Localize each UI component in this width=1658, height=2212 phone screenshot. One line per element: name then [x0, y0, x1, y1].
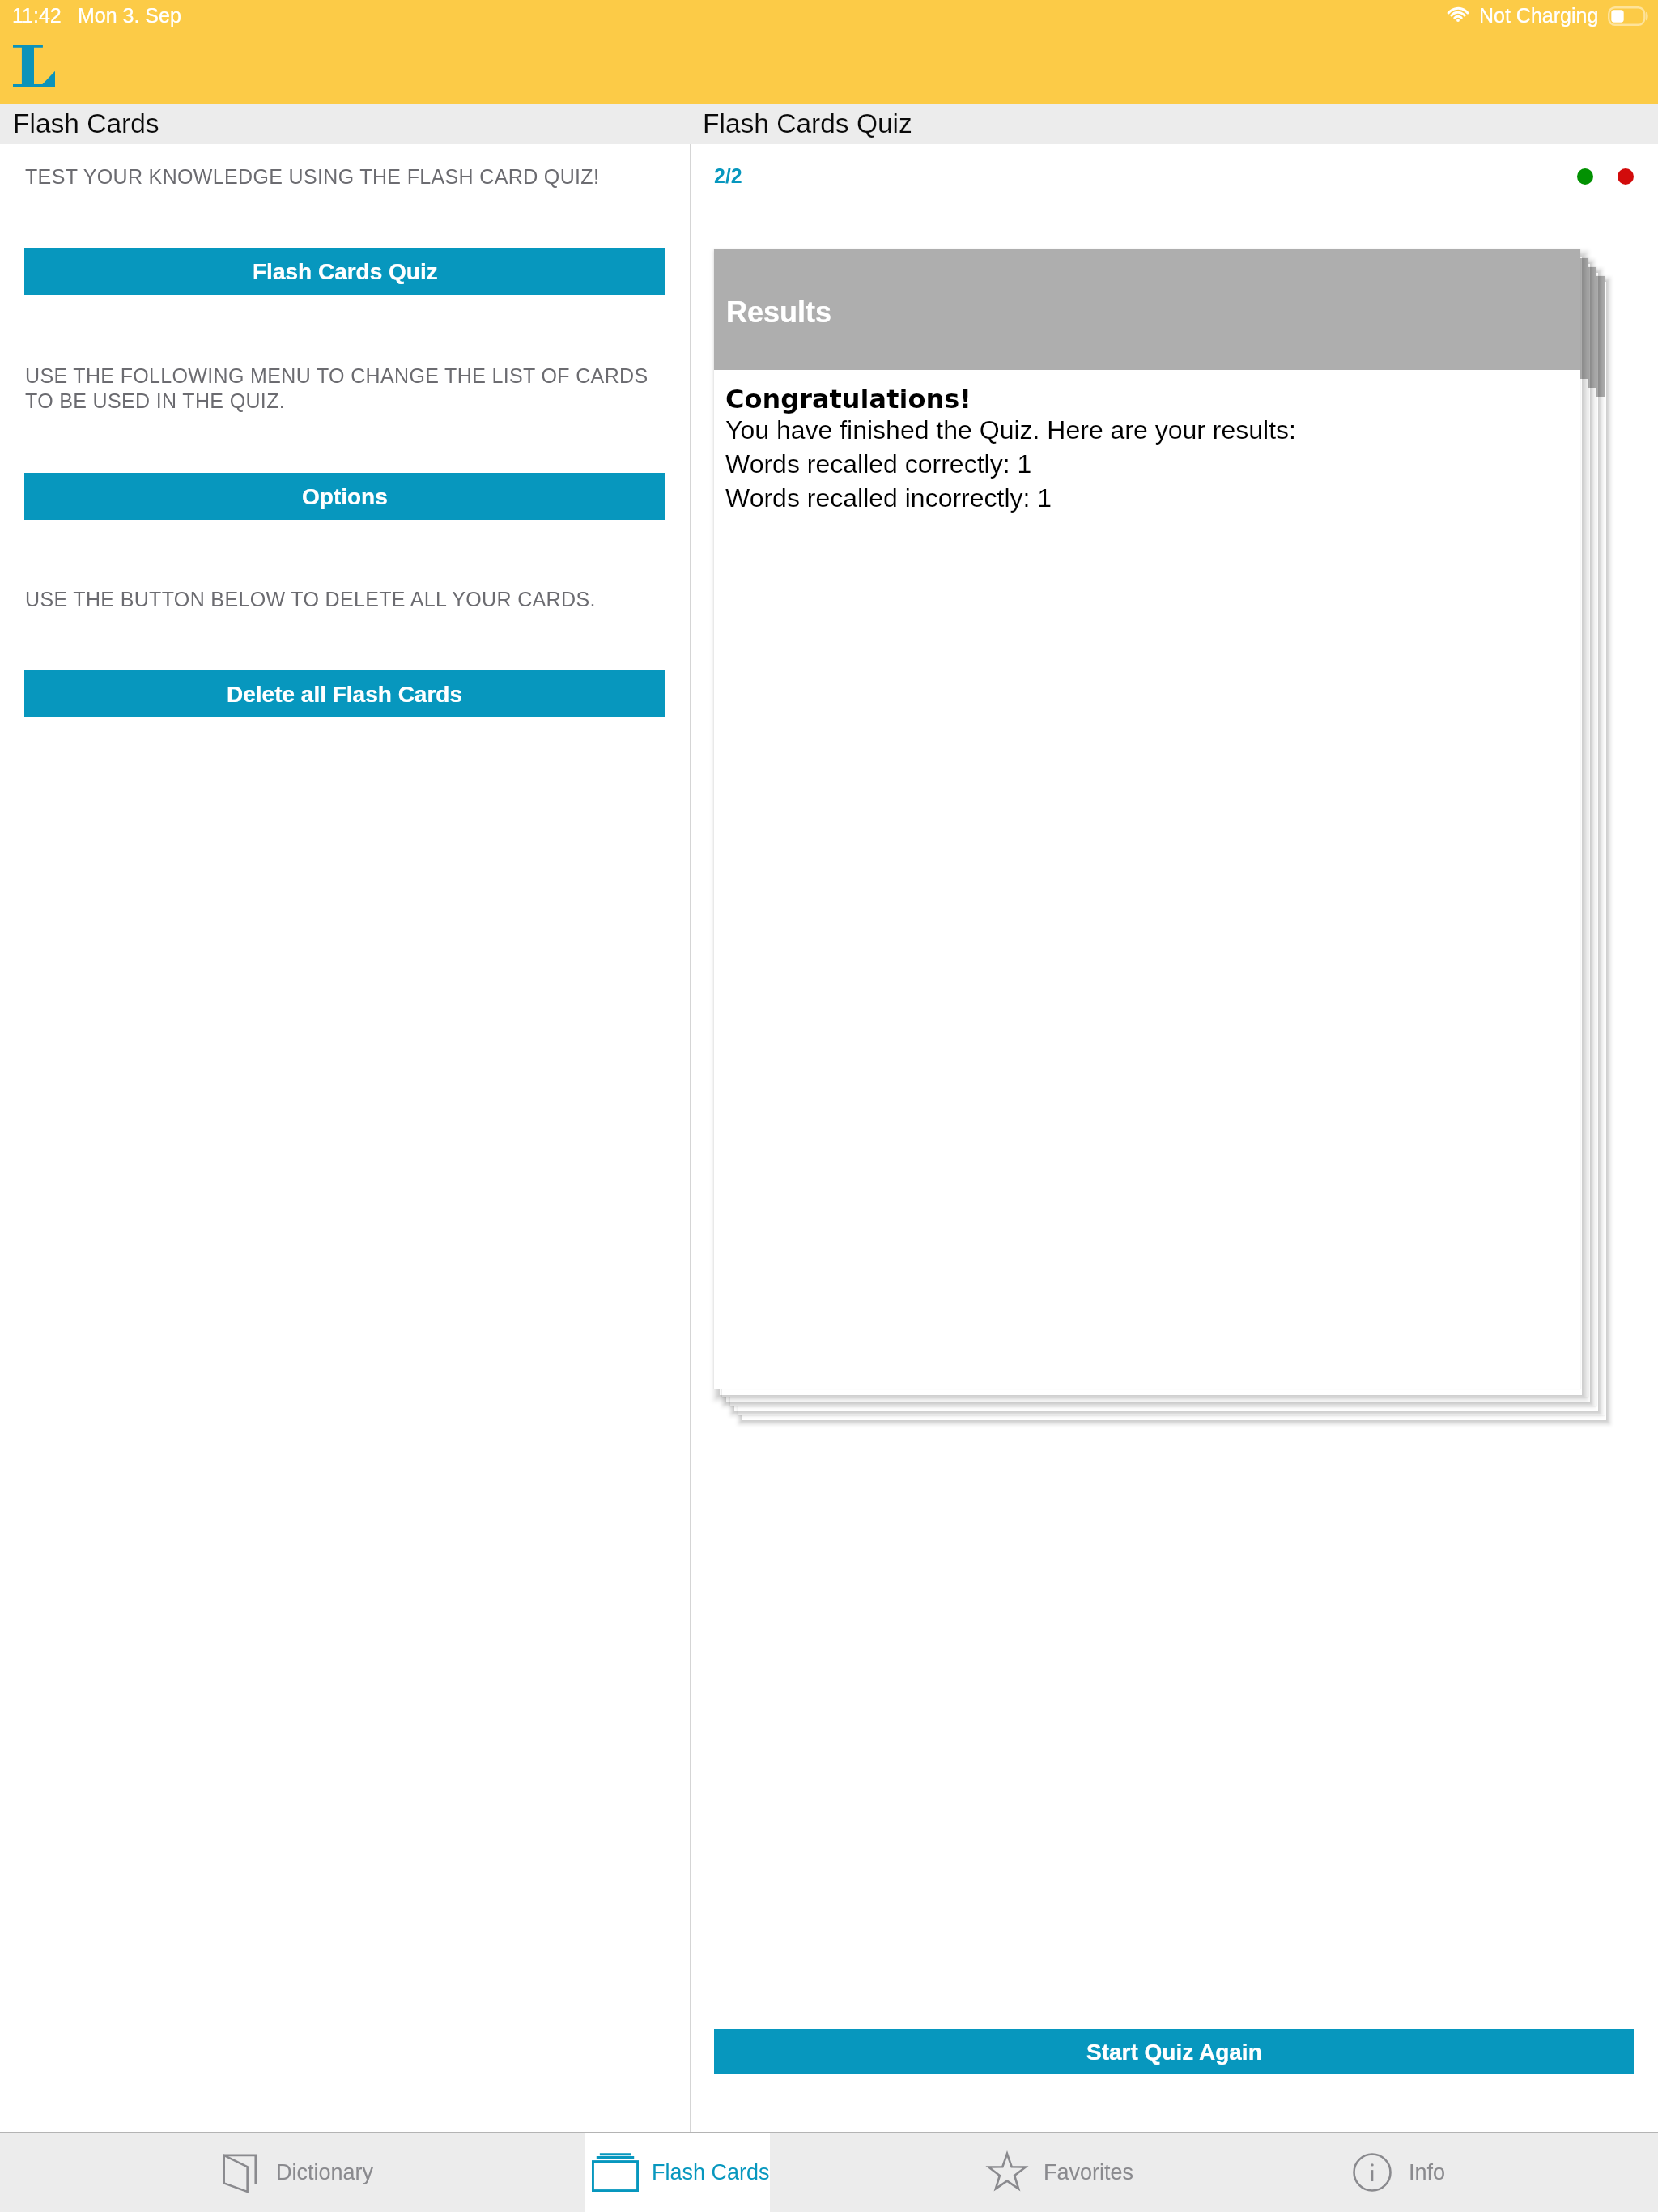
staticText: USE THE BUTTON BELOW TO DELETE ALL YOUR … [25, 588, 666, 610]
staticText: Results [726, 296, 832, 328]
button[interactable]: Flash Cards Quiz [24, 248, 665, 295]
button[interactable]: Dictionary [215, 2133, 380, 2212]
staticText: Start Quiz Again [1086, 2040, 1262, 2065]
staticText: Flash Cards Quiz [253, 259, 438, 284]
button[interactable]: Flash Cards [585, 2133, 770, 2212]
staticText: Flash Cards Quiz [703, 108, 912, 138]
button[interactable]: Options [24, 473, 665, 520]
button[interactable]: Delete all Flash Cards [24, 670, 665, 717]
staticText: Mon 3. Sep [78, 4, 181, 27]
other: Wi-Fi [1446, 6, 1470, 23]
staticText: USE THE FOLLOWING MENU TO CHANGE THE LIS… [25, 364, 666, 412]
button[interactable]: Favorites [980, 2133, 1140, 2212]
staticText: You have finished the Quiz. Here are you… [725, 415, 1296, 445]
button[interactable]: Start Quiz Again [714, 2029, 1634, 2074]
other: Battery [1608, 6, 1650, 26]
staticText: Options [302, 484, 388, 509]
staticText: Words recalled correctly: 1 [725, 449, 1032, 479]
button[interactable]: Results [714, 249, 1580, 1389]
staticText: Dictionary [276, 2160, 374, 2184]
other: Correct answers [1577, 168, 1593, 185]
staticText: Congratulations! [725, 384, 971, 414]
staticText: 2/2 [714, 164, 742, 187]
staticText: Flash Cards [13, 108, 159, 138]
staticText: 11:42 [12, 4, 62, 27]
staticText: Favorites [1044, 2160, 1134, 2184]
staticText: Delete all Flash Cards [227, 682, 463, 707]
staticText: Words recalled incorrectly: 1 [725, 483, 1052, 513]
other: Incorrect answers [1618, 168, 1634, 185]
staticText: Flash Cards [652, 2160, 770, 2184]
button[interactable]: Info [1346, 2133, 1454, 2212]
staticText: Not Charging [1479, 4, 1599, 27]
staticText: Info [1409, 2160, 1446, 2184]
staticText: TEST YOUR KNOWLEDGE USING THE FLASH CARD… [25, 165, 666, 188]
